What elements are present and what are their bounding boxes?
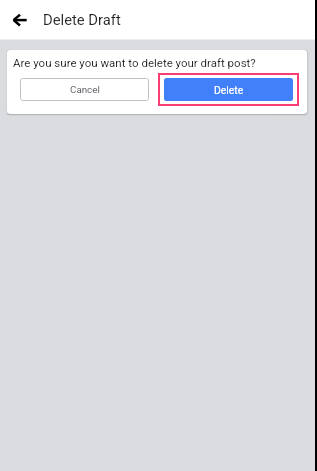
staticText: Delete Draft bbox=[43, 11, 121, 28]
staticText: Cancel bbox=[70, 84, 100, 95]
button[interactable]: Delete bbox=[164, 78, 293, 101]
button[interactable]: Navigate up bbox=[8, 8, 32, 32]
staticText: Are you sure you want to delete your dra… bbox=[13, 56, 256, 69]
button[interactable]: Cancel bbox=[20, 78, 149, 101]
staticText: Delete bbox=[214, 84, 244, 96]
